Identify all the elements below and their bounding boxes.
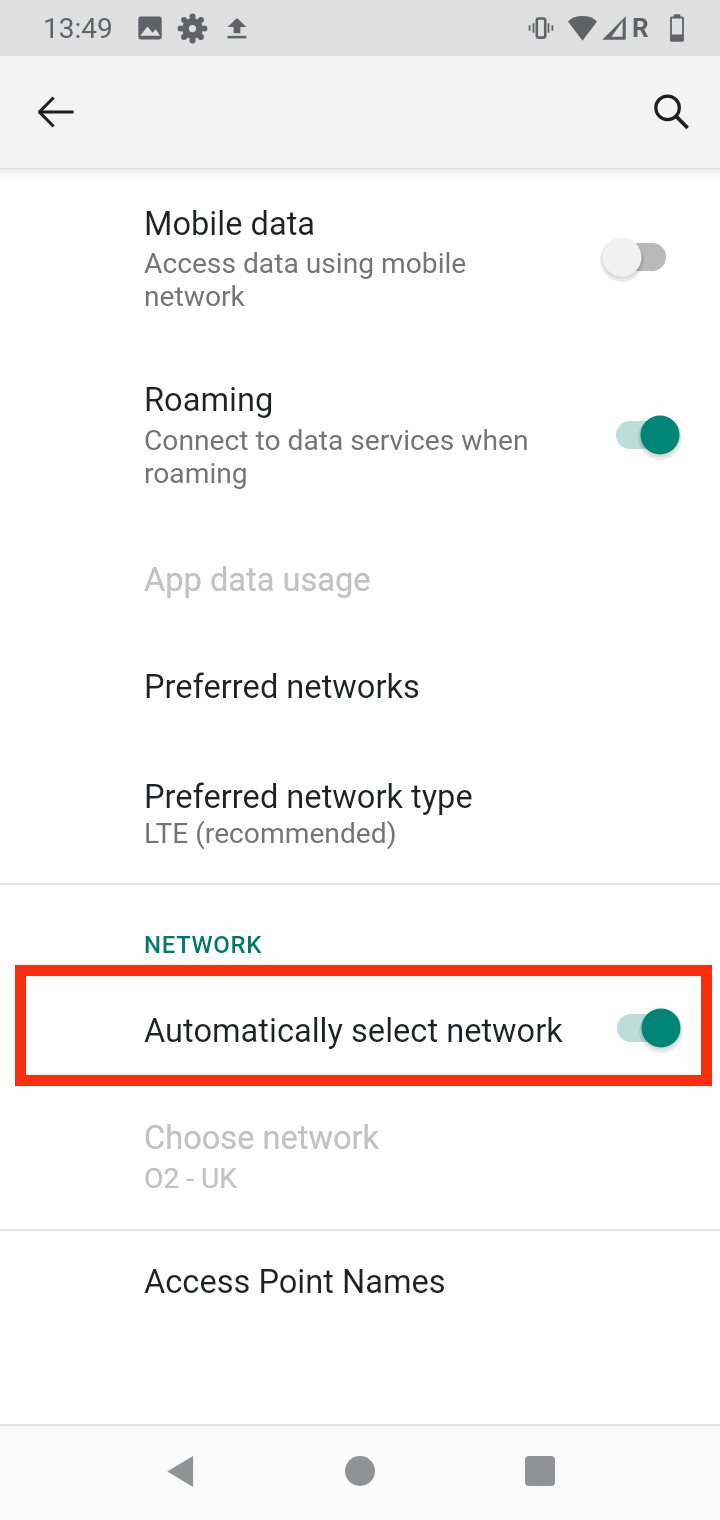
staticText: LTE (recommended) [144, 817, 397, 850]
button[interactable]: On [620, 395, 700, 475]
button[interactable]: Navigate up [16, 72, 96, 152]
staticText: Roaming [144, 381, 274, 419]
button[interactable] [0, 178, 720, 316]
staticText: Automatically select network [144, 1012, 563, 1050]
button[interactable]: Home [318, 1429, 402, 1513]
button[interactable]: On [621, 988, 701, 1068]
staticText: Access data using mobile [144, 247, 467, 280]
staticText: 13:49 [43, 12, 113, 45]
staticText: Access Point Names [144, 1263, 446, 1301]
staticText: roaming [144, 457, 248, 490]
staticText: R [632, 13, 649, 43]
button[interactable] [0, 358, 720, 508]
staticText: Choose network [144, 1119, 380, 1157]
button[interactable]: Search [631, 72, 711, 152]
staticText: NETWORK [144, 931, 262, 959]
button[interactable]: Back [138, 1429, 222, 1513]
staticText: App data usage [144, 561, 371, 599]
button[interactable] [0, 1243, 720, 1327]
button[interactable]: Off [582, 217, 662, 297]
button[interactable] [0, 754, 720, 872]
staticText: Connect to data services when [144, 424, 529, 457]
button[interactable] [0, 537, 720, 621]
staticText: network [144, 280, 245, 313]
button[interactable] [0, 979, 720, 1075]
staticText: Preferred network type [144, 778, 473, 816]
staticText: O2 - UK [144, 1162, 237, 1195]
staticText: Preferred networks [144, 668, 420, 706]
button[interactable]: Overview [498, 1429, 582, 1513]
button[interactable] [0, 645, 720, 729]
staticText: Mobile data [144, 205, 316, 243]
button[interactable] [0, 1097, 720, 1215]
